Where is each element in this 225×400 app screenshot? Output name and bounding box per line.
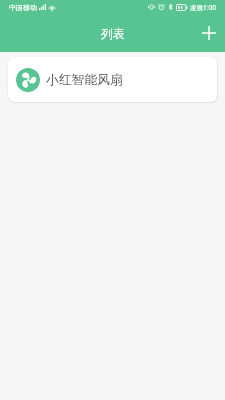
staticText: 凌晨1:00 xyxy=(190,3,216,12)
button[interactable]: 小红智能风扇 xyxy=(8,57,217,102)
staticText: 小红智能风扇 xyxy=(46,72,123,88)
staticText: 中国移动 xyxy=(9,3,37,12)
staticText: 列表 xyxy=(101,26,125,41)
button[interactable]: Add xyxy=(193,17,225,49)
